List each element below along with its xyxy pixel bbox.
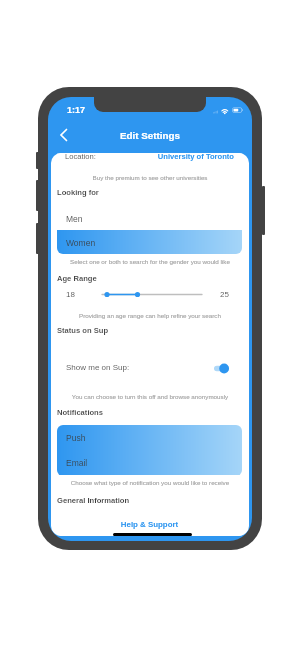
button[interactable]: Email [57,450,242,475]
button[interactable]: Back [54,125,73,145]
staticText: Location: [65,153,96,160]
staticText: 1:17 [67,105,86,115]
staticText: Notifications [57,408,103,416]
staticText: Providing an age range can help refine y… [51,312,249,319]
staticText: Show me on Sup: [66,363,130,372]
staticText: Buy the premium to see other universitie… [51,174,249,181]
staticText: University of Toronto [57,153,234,160]
button[interactable]: Push [57,425,242,450]
staticText: Status on Sup [57,326,109,334]
staticText: Select one or both to search for the gen… [51,258,249,265]
button[interactable]: Location: [57,153,242,168]
button[interactable]: Show me on Sup toggle [214,363,229,374]
staticText: Looking for [57,188,99,196]
staticText: You can choose to turn this off and brow… [51,393,249,400]
staticText: Men [66,214,83,223]
button[interactable]: Women [57,230,242,254]
button[interactable]: Men [57,206,242,230]
staticText: 18 [66,290,75,299]
staticText: Women [66,238,96,247]
button[interactable]: Help & Support [57,513,242,536]
staticText: Choose what type of notification you wou… [51,479,249,486]
staticText: General Information [57,496,130,504]
staticText: Email [66,458,88,467]
staticText: Help & Support [57,520,242,529]
staticText: Edit Settings [48,130,252,141]
staticText: Age Range [57,274,97,282]
button[interactable]: Show me on Sup: [57,349,242,388]
staticText: Push [66,433,86,442]
staticText: 25 [57,290,229,299]
